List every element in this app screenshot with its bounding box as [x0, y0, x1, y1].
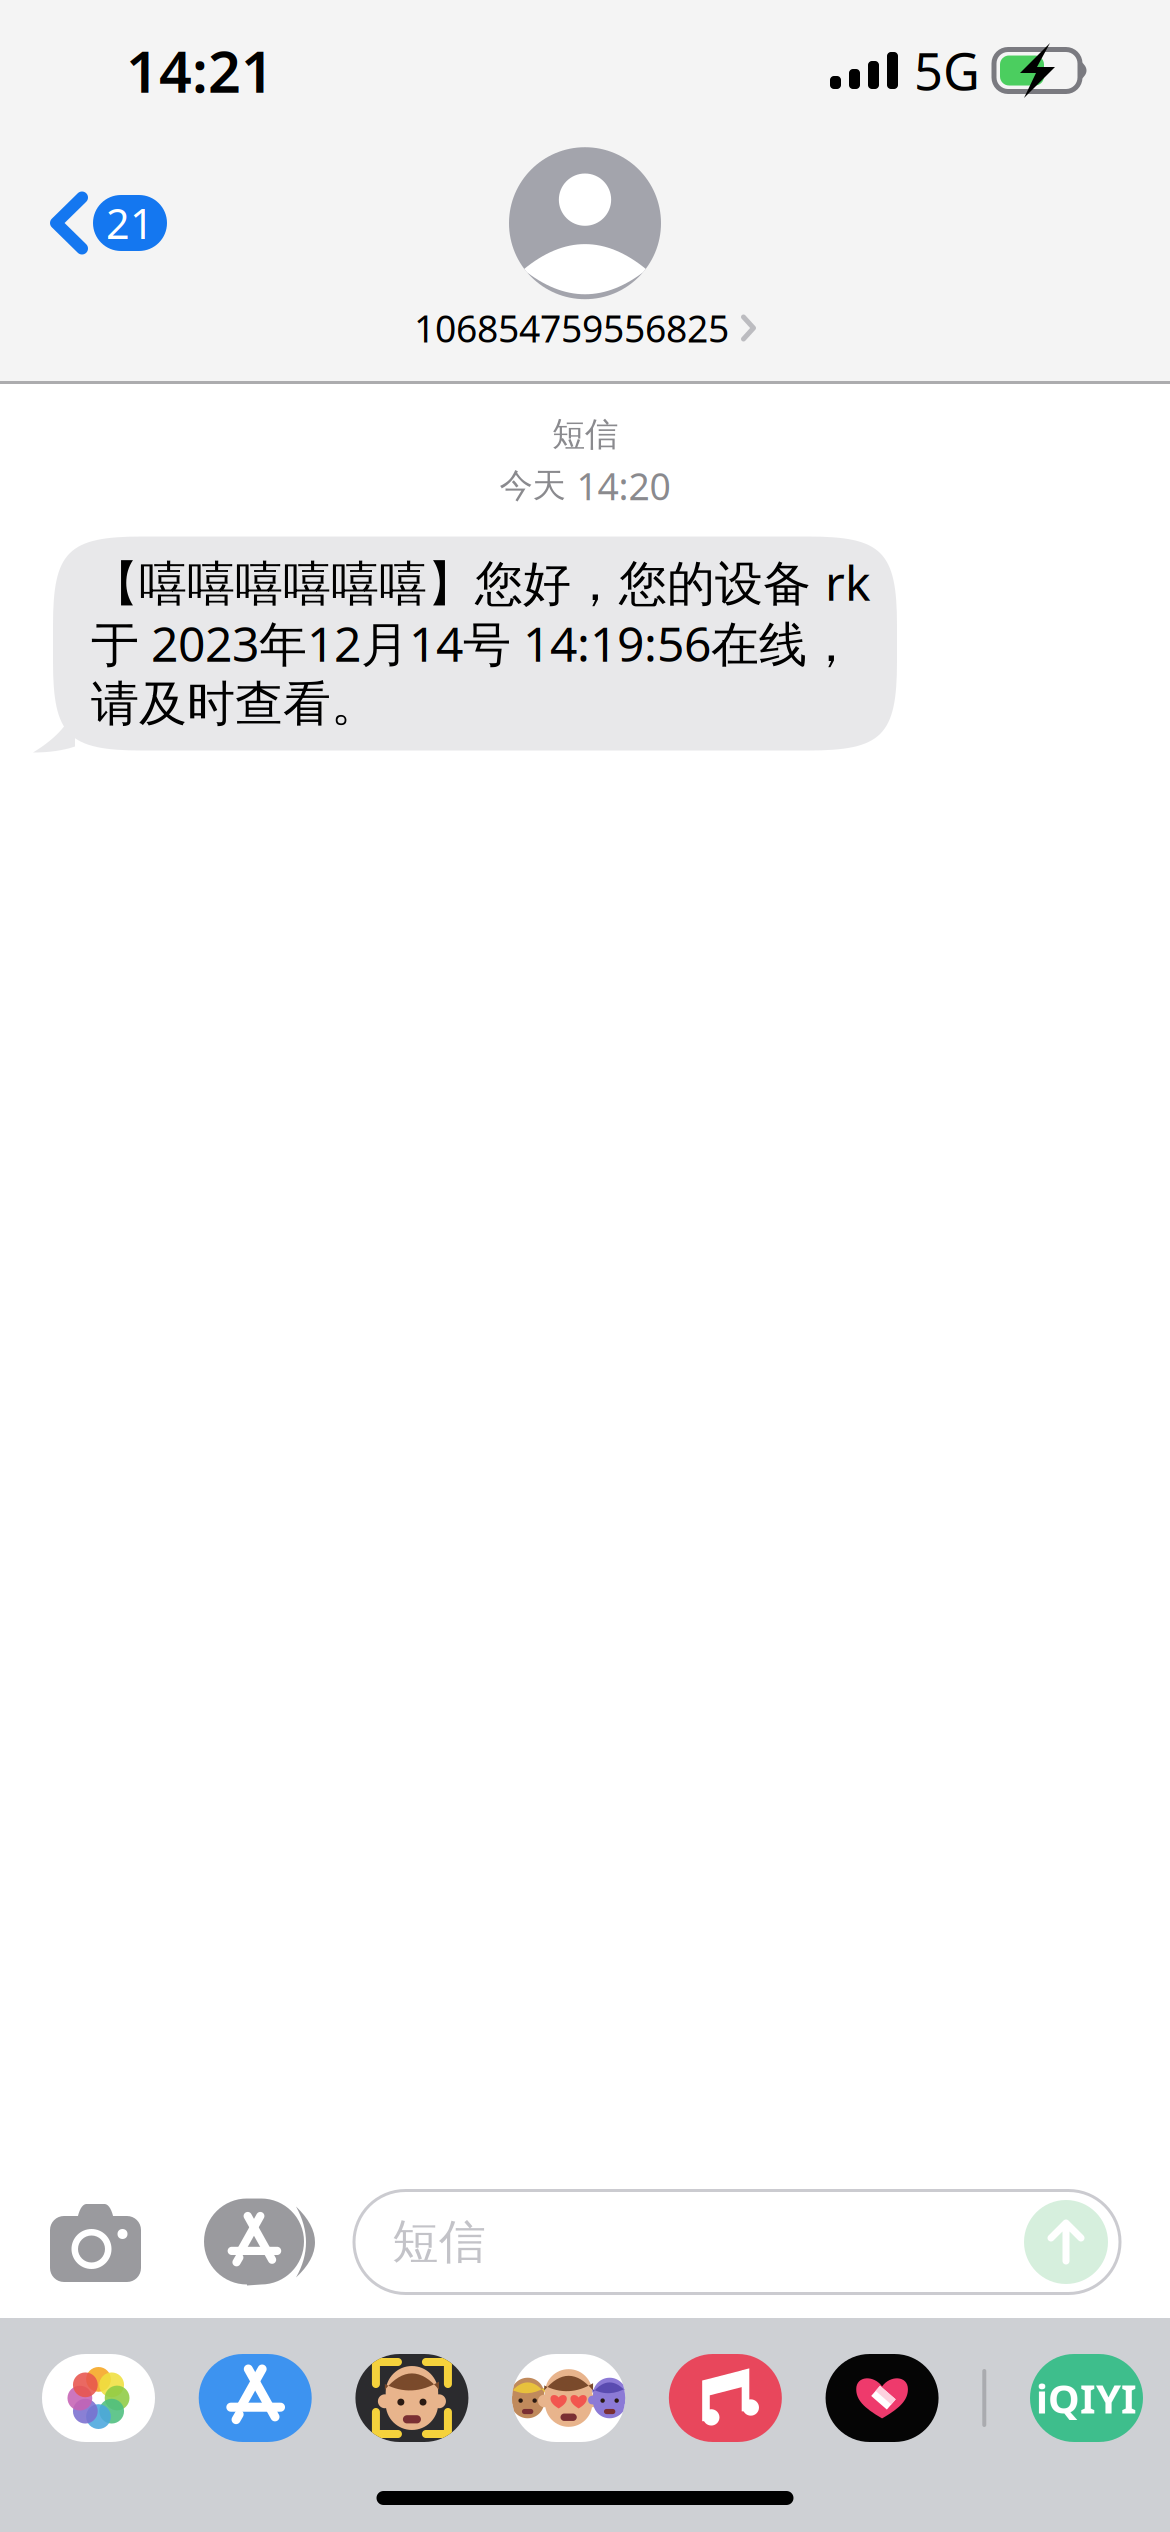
button[interactable]: Apple Music [669, 2354, 782, 2442]
staticText: 14:20 [576, 461, 670, 510]
staticText: 14:21 [126, 32, 274, 108]
staticText: 106854759556825 [414, 303, 729, 353]
staticText: 短信 [552, 414, 618, 455]
button[interactable]: iQIYI [1030, 2354, 1143, 2442]
button[interactable]: Photos [42, 2354, 155, 2442]
staticText: 【嘻嘻嘻嘻嘻嘻】您好，您的设备 rk [91, 550, 871, 614]
staticText: 于 2023年12月14号 14:19:56在线， [91, 611, 855, 675]
staticText: 请及时查看。 [91, 674, 379, 733]
button[interactable]: Back to Messages, 21 unread [0, 191, 191, 330]
staticText: 短信 [392, 2213, 486, 2271]
button[interactable]: Send [1024, 2200, 1108, 2284]
button[interactable]: Apps [204, 2186, 354, 2298]
button[interactable]: Stickers [512, 2354, 625, 2442]
staticText: 21 [106, 196, 154, 250]
button[interactable]: App Store [199, 2354, 312, 2442]
button[interactable]: Health [826, 2354, 939, 2442]
staticText: iQIYI [1036, 2371, 1137, 2424]
button[interactable]: Camera [0, 2186, 204, 2298]
staticText: 5G [914, 37, 980, 104]
button[interactable]: Memoji [355, 2354, 468, 2442]
staticText: 今天 [499, 465, 565, 506]
